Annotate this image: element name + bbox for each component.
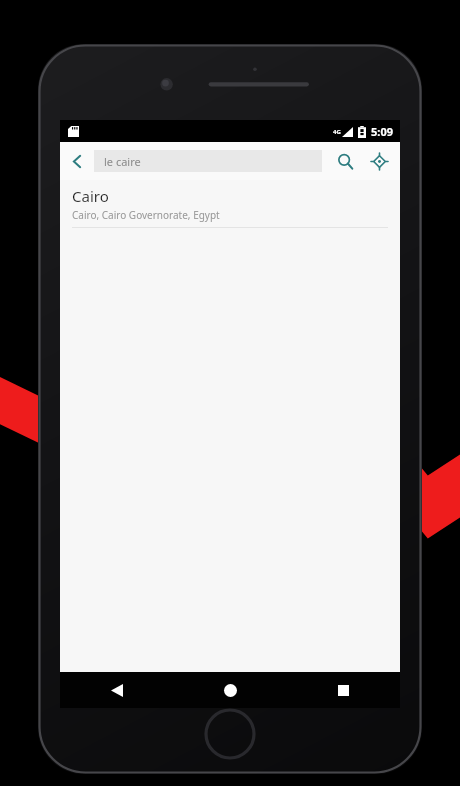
staticText: le caire — [104, 154, 141, 169]
staticText: 5:09 — [371, 124, 393, 139]
button[interactable]: Back — [60, 672, 174, 708]
staticText: Cairo, Cairo Governorate, Egypt — [72, 208, 220, 222]
button[interactable]: Search — [328, 144, 362, 178]
staticText: 4G — [333, 128, 341, 136]
button[interactable]: Recent apps — [287, 672, 400, 708]
button[interactable]: My location — [362, 144, 396, 178]
button[interactable]: Home — [174, 672, 287, 708]
button[interactable]: Back — [60, 144, 94, 178]
button[interactable]: Cairo — [60, 180, 400, 227]
staticText: Cairo — [72, 186, 109, 206]
button[interactable]: le caire — [94, 150, 322, 172]
